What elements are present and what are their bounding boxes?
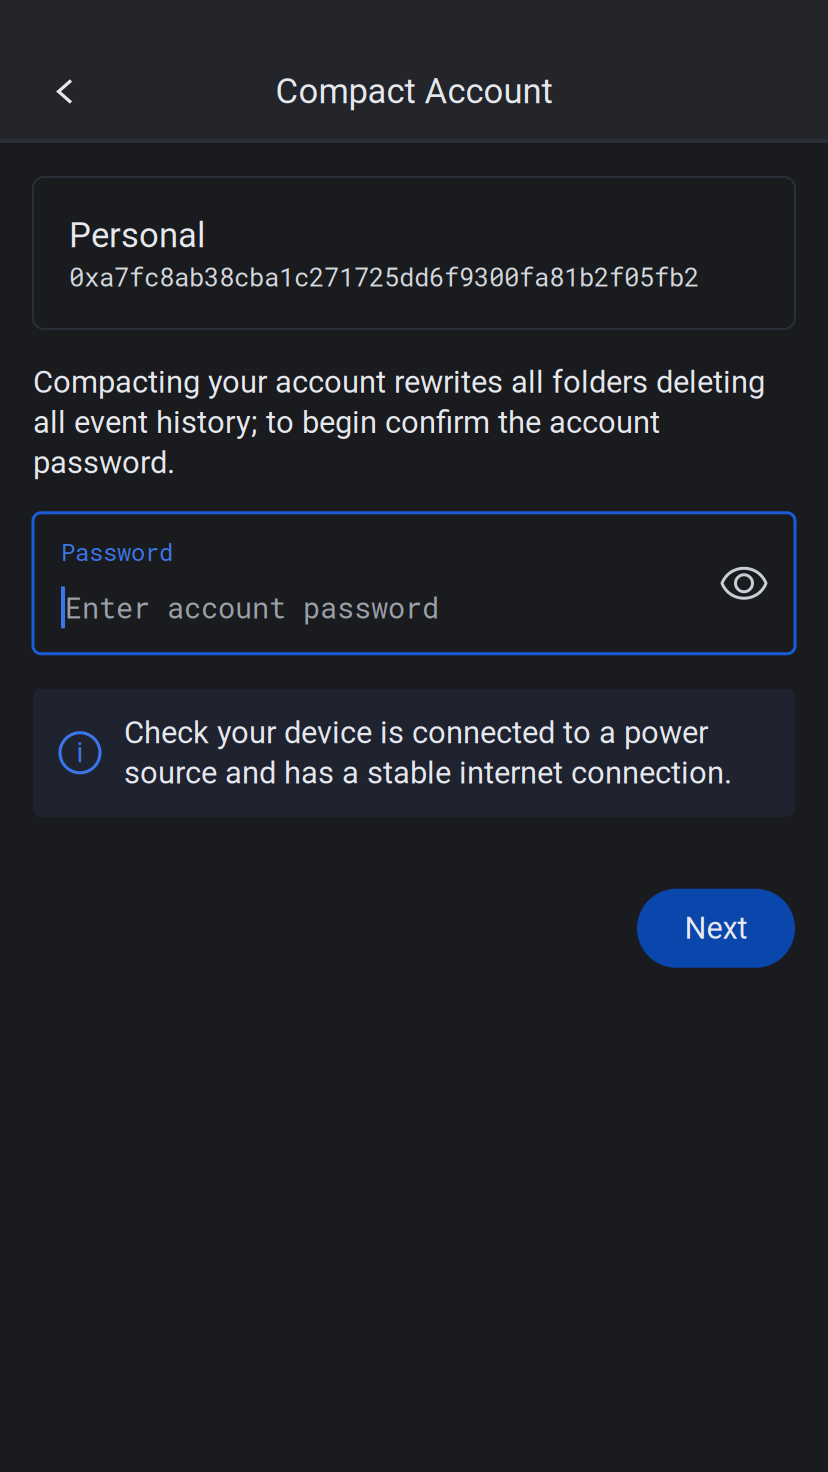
- button[interactable]: Next: [637, 889, 795, 968]
- staticText: Personal: [69, 215, 205, 256]
- staticText: Check your device is connected to a powe…: [124, 714, 732, 791]
- button[interactable]: Show password: [704, 543, 784, 623]
- staticText: 0xa7fc8ab38cba1c271725dd6f9300fa81b2f05f…: [69, 260, 699, 293]
- staticText: Next: [684, 910, 747, 946]
- staticText: Compact Account: [275, 71, 552, 112]
- staticText: Enter account password: [65, 588, 439, 626]
- staticText: Compacting your account rewrites all fol…: [33, 364, 765, 481]
- button[interactable]: Back: [32, 58, 98, 124]
- staticText: Password: [61, 536, 173, 567]
- staticText: i: [76, 736, 83, 769]
